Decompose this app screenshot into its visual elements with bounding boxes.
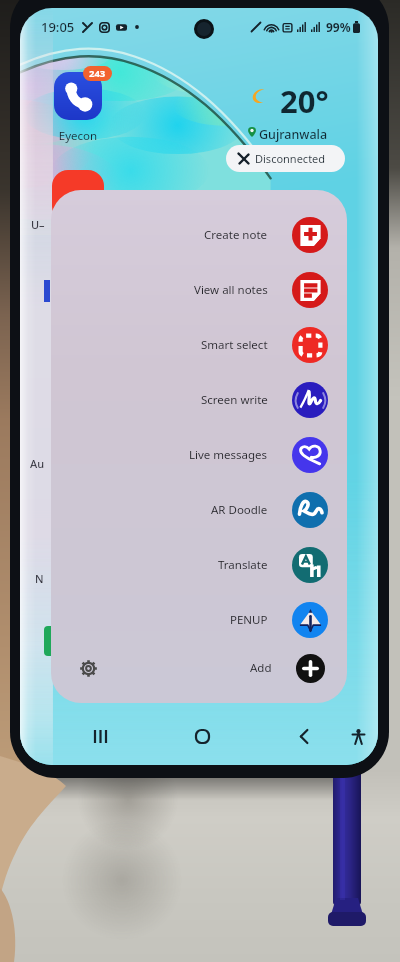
button[interactable]: Screen write [51, 381, 347, 419]
button[interactable]: View all notes [51, 271, 347, 309]
button[interactable]: Translate [51, 546, 347, 584]
button[interactable]: Home [186, 720, 218, 752]
staticText: Live messages [189, 447, 268, 463]
button[interactable]: Eyecon [54, 72, 102, 120]
button[interactable]: Live messages [51, 436, 347, 474]
staticText: Create note [204, 227, 268, 243]
staticText: U– [31, 217, 45, 232]
button[interactable]: Recents [84, 720, 116, 752]
staticText: 99% [326, 19, 351, 35]
staticText: Au [30, 456, 45, 471]
staticText: 20° [280, 80, 329, 122]
staticText: PENUP [230, 612, 268, 628]
staticText: Disconnected [255, 151, 326, 166]
button[interactable]: Add [51, 651, 347, 685]
staticText: 243 [89, 67, 106, 80]
staticText: View all notes [194, 282, 268, 298]
button[interactable]: Accessibility [342, 720, 374, 752]
button[interactable]: Back [288, 720, 320, 752]
staticText: N [35, 571, 44, 586]
staticText: Translate [218, 557, 268, 573]
button[interactable]: AR Doodle [51, 491, 347, 529]
button[interactable]: Settings [71, 651, 105, 685]
staticText: Screen write [201, 392, 268, 408]
button[interactable]: Disconnected [226, 145, 345, 172]
staticText: 19:05 [41, 18, 75, 36]
staticText: Gujranwala [259, 126, 328, 143]
staticText: AR Doodle [211, 502, 268, 518]
button[interactable]: Create note [51, 216, 347, 254]
staticText: Add [250, 660, 272, 676]
button[interactable]: Smart select [51, 326, 347, 364]
staticText: Smart select [201, 337, 268, 353]
button[interactable]: PENUP [51, 601, 347, 639]
staticText: Eyecon [48, 128, 108, 144]
